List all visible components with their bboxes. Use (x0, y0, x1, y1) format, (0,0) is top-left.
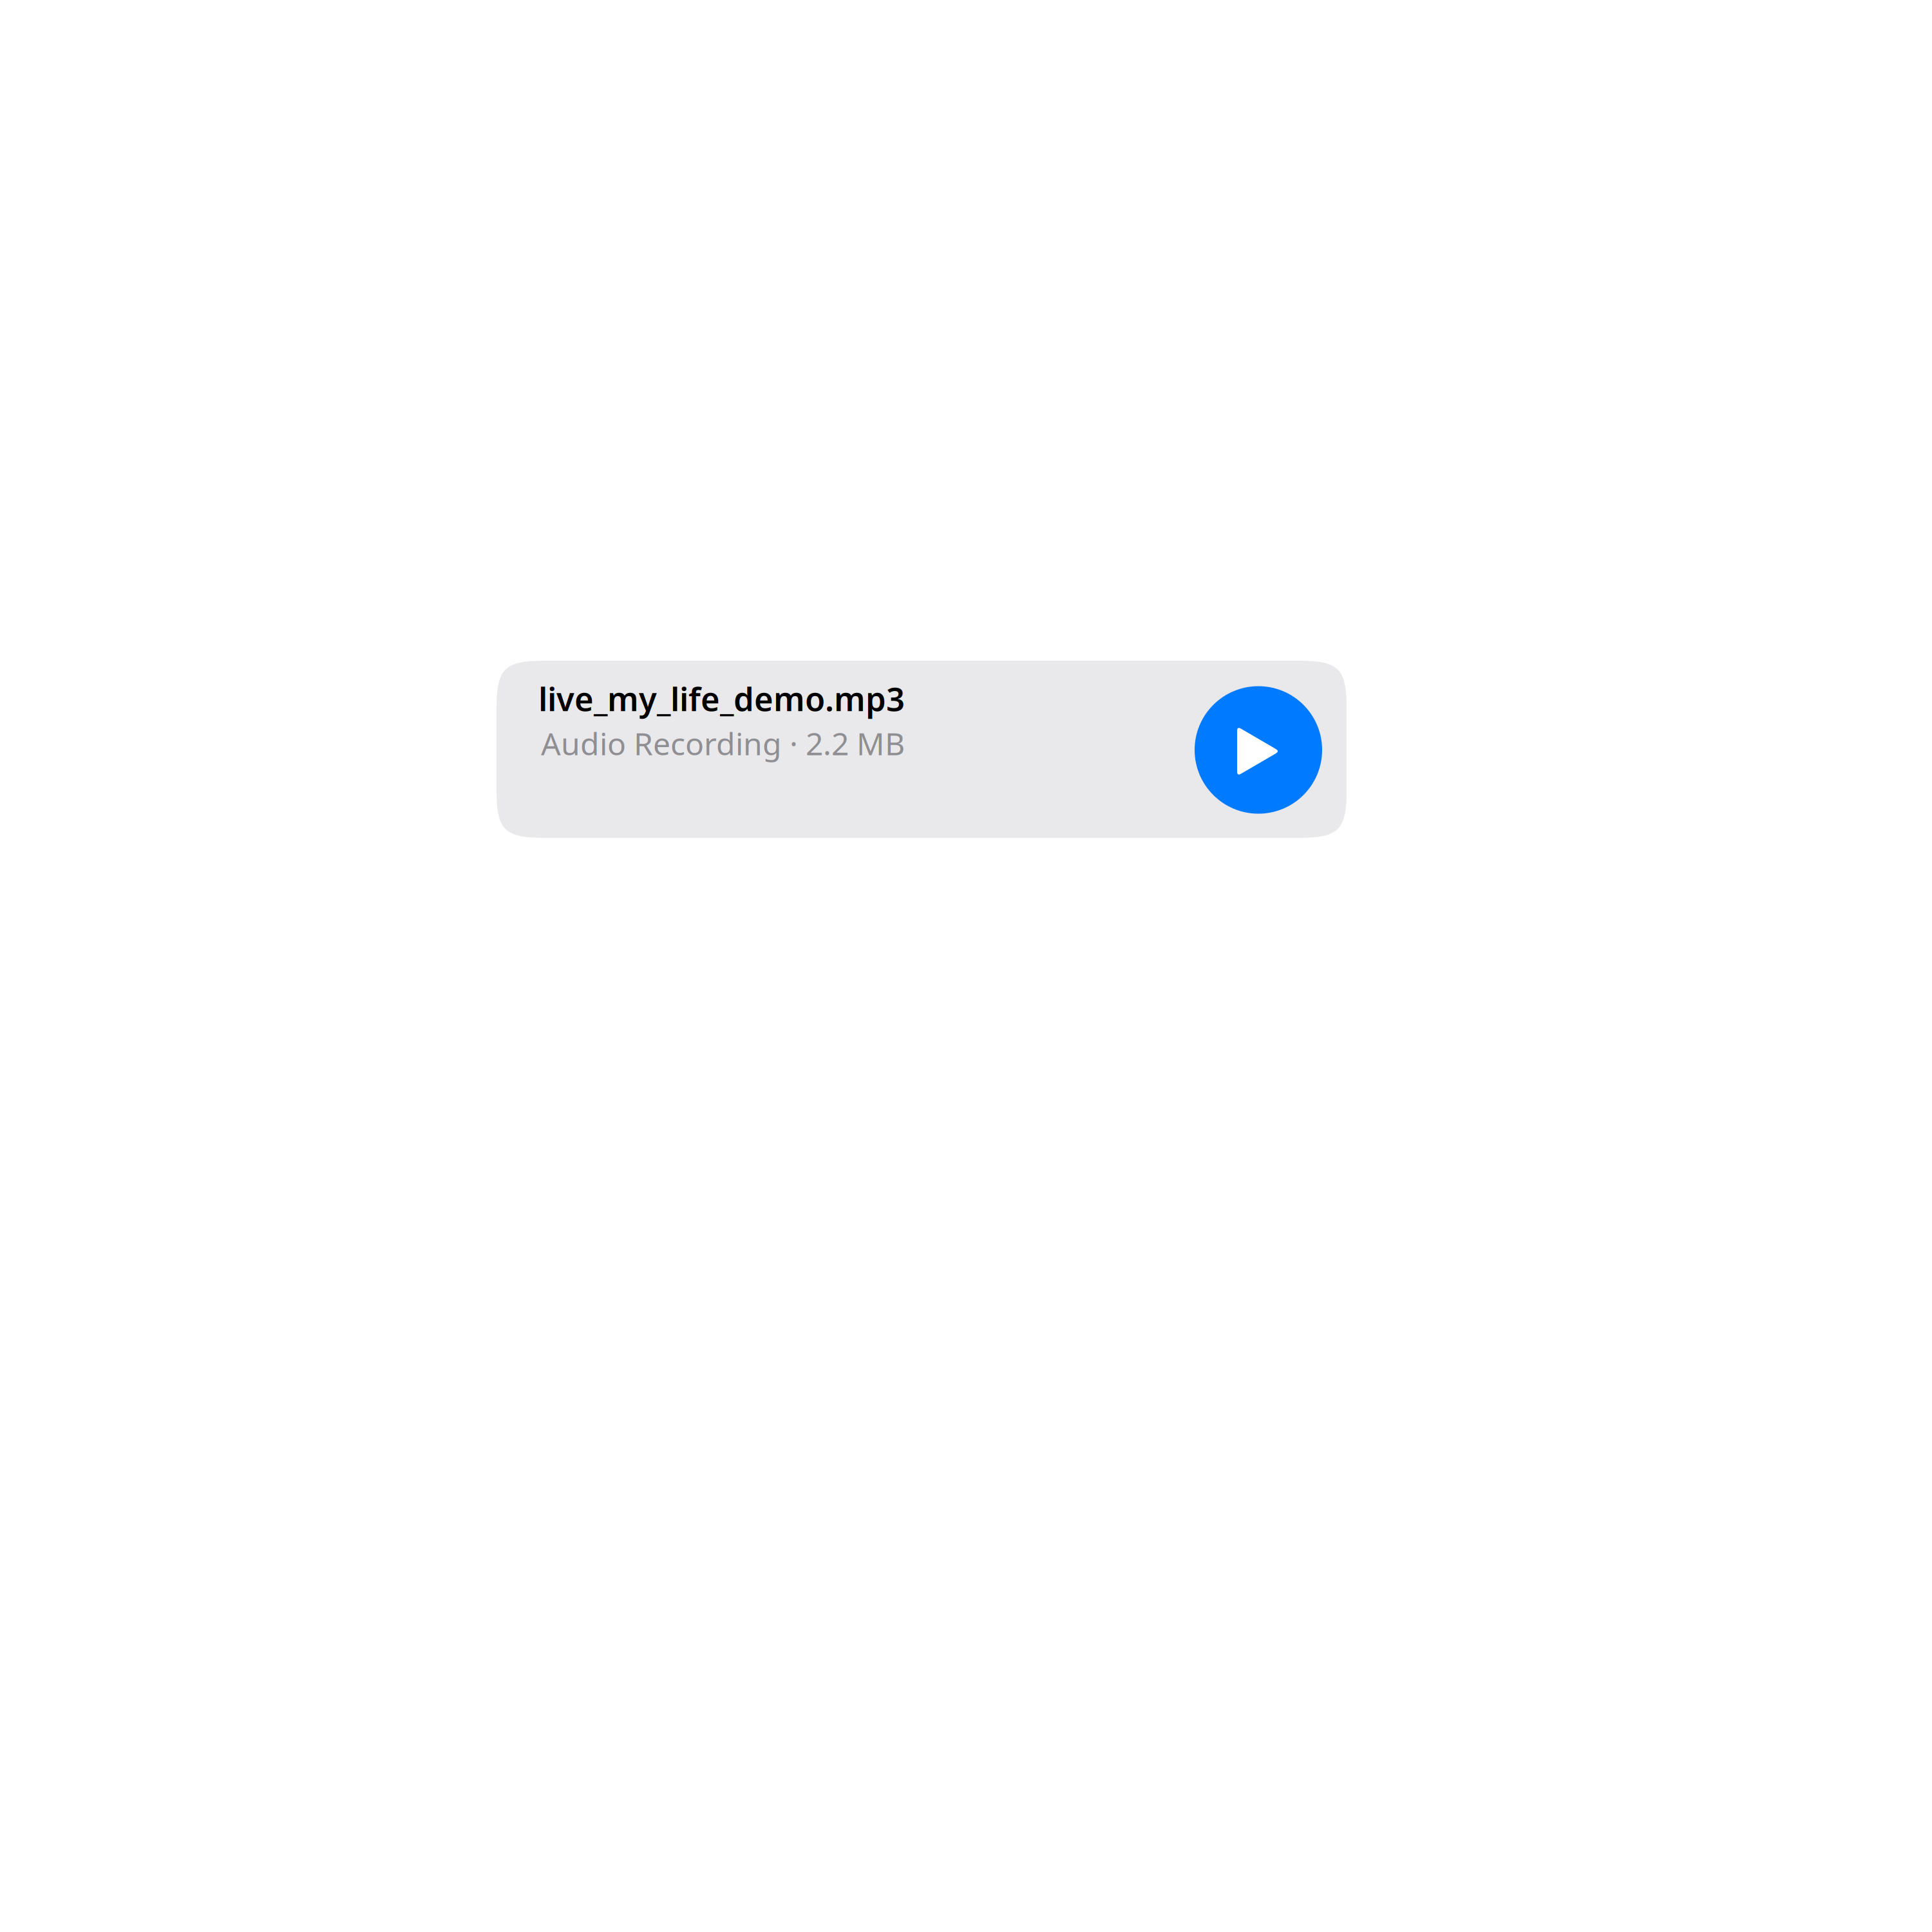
button[interactable]: live_my_life_demo.mp3 (497, 661, 1347, 838)
button[interactable]: Play live_my_life_demo.mp3 (1195, 686, 1322, 814)
staticText: Audio Recording · 2.2 MB (541, 723, 905, 764)
staticText: live_my_life_demo.mp3 (538, 677, 905, 720)
